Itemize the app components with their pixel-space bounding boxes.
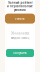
staticText: Обновляется — [10, 32, 29, 35]
button[interactable]: Получить — [6, 49, 34, 57]
staticText: Узнать — [15, 17, 25, 20]
staticText: Полный рейтинг — [7, 1, 32, 4]
button[interactable]: Узнать — [5, 14, 35, 24]
staticText: каждый месяц — [10, 36, 29, 40]
staticText: и персональные — [7, 4, 33, 8]
staticText: условия — [14, 8, 26, 12]
staticText: Получить — [13, 51, 27, 55]
